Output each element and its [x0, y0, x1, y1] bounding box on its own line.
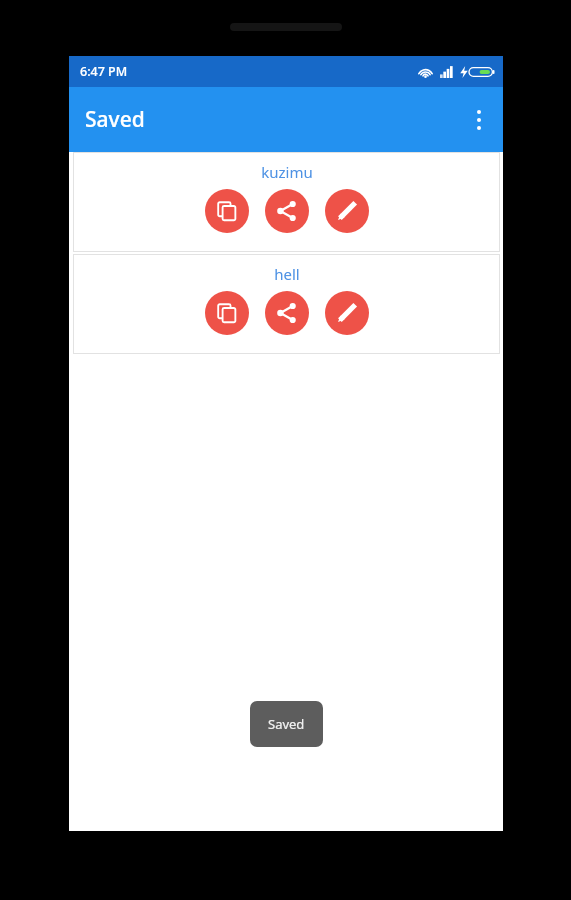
button[interactable]: Share: [265, 291, 309, 335]
button[interactable]: Share: [265, 189, 309, 233]
button[interactable]: Edit: [325, 291, 369, 335]
staticText: Saved: [268, 715, 305, 733]
button[interactable]: kuzimu: [74, 153, 499, 251]
button[interactable]: Copy: [205, 291, 249, 335]
button[interactable]: Copy: [205, 189, 249, 233]
button[interactable]: Saved: [250, 701, 323, 747]
button[interactable]: More options: [455, 96, 503, 144]
staticText: kuzimu: [261, 162, 313, 182]
button[interactable]: hell: [74, 255, 499, 353]
staticText: 6:47 PM: [80, 63, 128, 80]
button[interactable]: Edit: [325, 189, 369, 233]
staticText: Saved: [85, 105, 145, 134]
staticText: hell: [274, 264, 300, 284]
